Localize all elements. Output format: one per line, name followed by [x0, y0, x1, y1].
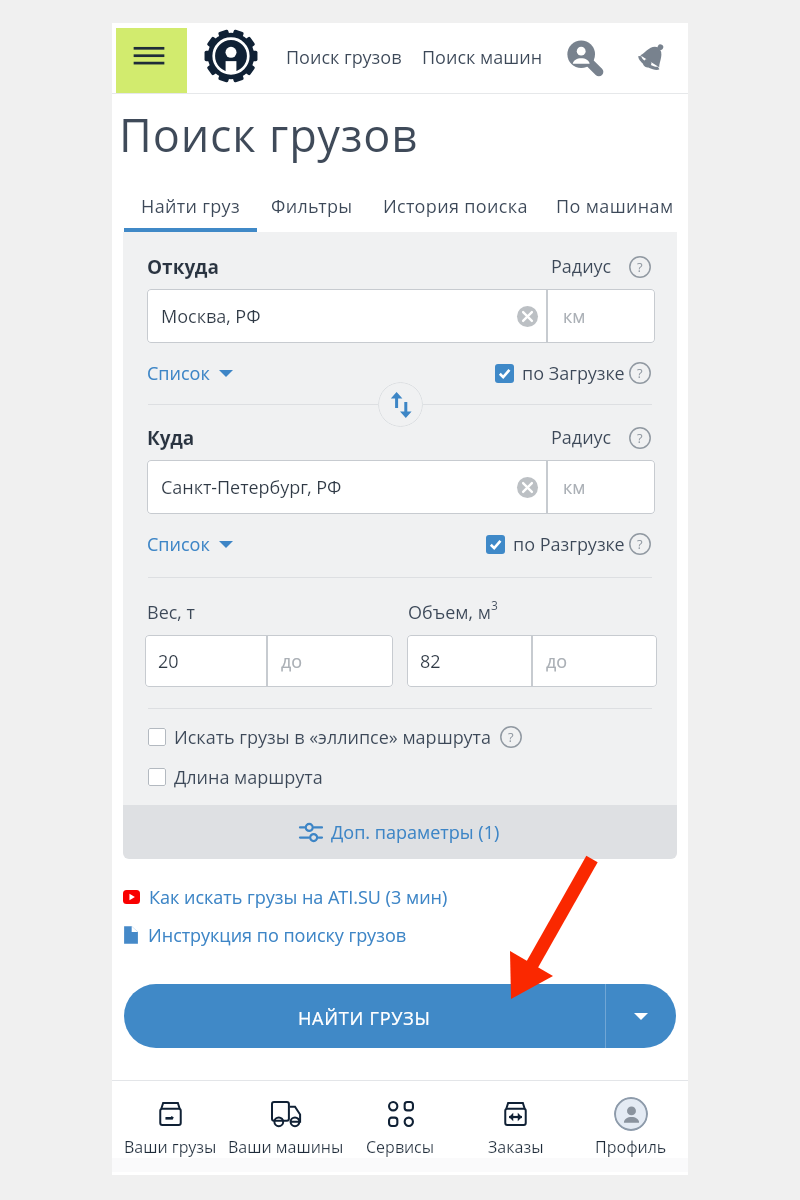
staticText: Длина маршрута: [174, 765, 323, 790]
button[interactable]: Доп. параметры (1): [123, 805, 677, 859]
staticText: до: [546, 649, 568, 674]
button[interactable]: км: [547, 460, 655, 514]
button[interactable]: Notifications: [631, 34, 675, 78]
staticText: ?: [637, 258, 643, 276]
button[interactable]: Профиль: [573, 1081, 688, 1175]
staticText: 3: [491, 597, 498, 613]
staticText: Инструкция по поиску грузов: [148, 923, 406, 948]
button[interactable]: до: [267, 635, 393, 687]
button[interactable]: до: [532, 635, 657, 687]
button[interactable]: Список: [147, 360, 233, 386]
button[interactable]: По машинам: [556, 190, 674, 233]
staticText: Поиск грузов: [286, 45, 402, 70]
button[interactable]: Swap origin and destination: [378, 382, 423, 427]
button[interactable]: ATI.SU home: [204, 29, 258, 83]
button[interactable]: по Загрузке: [413, 360, 625, 386]
staticText: Сервисы: [366, 1136, 435, 1158]
button[interactable]: Menu: [116, 28, 187, 93]
staticText: История поиска: [383, 194, 528, 219]
button[interactable]: Найти груз: [124, 190, 257, 233]
staticText: Профиль: [595, 1136, 667, 1158]
staticText: ?: [637, 429, 643, 447]
staticText: км: [563, 475, 586, 500]
button[interactable]: История поиска: [381, 190, 529, 233]
staticText: Вес, т: [147, 600, 195, 625]
staticText: Ваши грузы: [124, 1136, 217, 1158]
staticText: Список: [147, 532, 210, 557]
staticText: по Загрузке: [522, 361, 625, 386]
button[interactable]: по Разгрузке: [413, 531, 625, 557]
button[interactable]: Фильтры: [269, 190, 355, 233]
staticText: Поиск машин: [422, 45, 543, 70]
staticText: ?: [637, 535, 643, 553]
button[interactable]: Список: [147, 531, 233, 557]
button[interactable]: Искать грузы в «эллипсе» маршрута: [148, 721, 522, 753]
button[interactable]: Москва, РФ: [147, 289, 547, 343]
staticText: ?: [508, 728, 514, 746]
staticText: По машинам: [556, 194, 674, 219]
button[interactable]: Инструкция по поиску грузов: [123, 922, 406, 948]
button[interactable]: Ваши грузы: [112, 1081, 228, 1175]
staticText: Поиск грузов: [119, 104, 418, 165]
staticText: Радиус: [551, 425, 612, 450]
button[interactable]: Поиск грузов: [286, 45, 402, 70]
staticText: Санкт-Петербург, РФ: [161, 475, 342, 500]
staticText: Ваши машины: [228, 1136, 343, 1158]
staticText: Объем, м: [408, 600, 491, 625]
button[interactable]: 82: [407, 635, 532, 687]
button[interactable]: Сервисы: [343, 1081, 458, 1175]
staticText: Заказы: [488, 1136, 544, 1158]
button[interactable]: Ваши машины: [228, 1081, 343, 1175]
staticText: Фильтры: [271, 194, 353, 219]
staticText: Доп. параметры (1): [331, 820, 500, 845]
staticText: Как искать грузы на ATI.SU (3 мин): [149, 885, 448, 910]
staticText: Радиус: [551, 254, 612, 279]
staticText: Найти груз: [141, 194, 241, 219]
staticText: ?: [637, 364, 643, 382]
button[interactable]: Санкт-Петербург, РФ: [147, 460, 547, 514]
staticText: Откуда: [147, 254, 219, 280]
button[interactable]: НАЙТИ ГРУЗЫ: [124, 984, 605, 1048]
button[interactable]: More search options: [606, 984, 676, 1048]
button[interactable]: Заказы: [458, 1081, 573, 1175]
button[interactable]: Поиск машин: [422, 45, 543, 70]
staticText: Список: [147, 361, 210, 386]
staticText: км: [563, 304, 586, 329]
staticText: Искать грузы в «эллипсе» маршрута: [174, 725, 492, 750]
button[interactable]: Длина маршрута: [148, 761, 323, 793]
button[interactable]: 20: [145, 635, 267, 687]
staticText: НАЙТИ ГРУЗЫ: [298, 1006, 431, 1031]
staticText: Москва, РФ: [161, 304, 261, 329]
button[interactable]: км: [547, 289, 655, 343]
button[interactable]: Search users: [561, 34, 605, 78]
staticText: 20: [158, 649, 179, 674]
button[interactable]: Как искать грузы на ATI.SU (3 мин): [123, 884, 448, 910]
staticText: 82: [420, 649, 441, 674]
staticText: по Разгрузке: [513, 532, 625, 557]
staticText: до: [281, 649, 303, 674]
staticText: Куда: [147, 425, 195, 451]
